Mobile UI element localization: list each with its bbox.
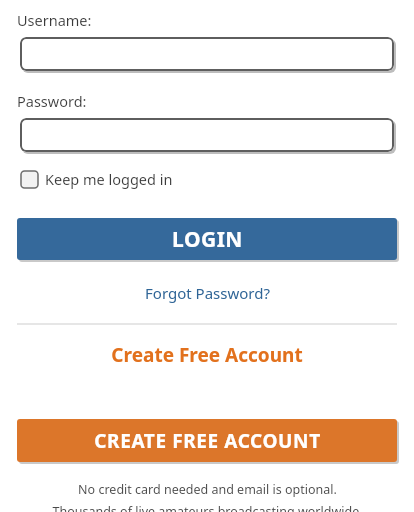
- staticText: Username:: [17, 10, 92, 30]
- staticText: CREATE FREE ACCOUNT: [94, 428, 321, 454]
- button[interactable]: [20, 118, 394, 152]
- staticText: No credit card needed and email is optio…: [78, 481, 337, 498]
- button[interactable]: [20, 37, 394, 71]
- staticText: Create Free Account: [111, 342, 303, 368]
- button[interactable]: CREATE FREE ACCOUNT: [17, 419, 397, 462]
- staticText: Keep me logged in: [45, 169, 173, 189]
- button[interactable]: Forgot Password?: [139, 281, 276, 305]
- staticText: Thousands of live amateurs broadcasting …: [52, 503, 363, 512]
- button[interactable]: LOGIN: [17, 218, 397, 260]
- staticText: LOGIN: [172, 225, 243, 254]
- button[interactable]: Keep me logged in: [21, 169, 173, 189]
- staticText: Password:: [17, 91, 87, 111]
